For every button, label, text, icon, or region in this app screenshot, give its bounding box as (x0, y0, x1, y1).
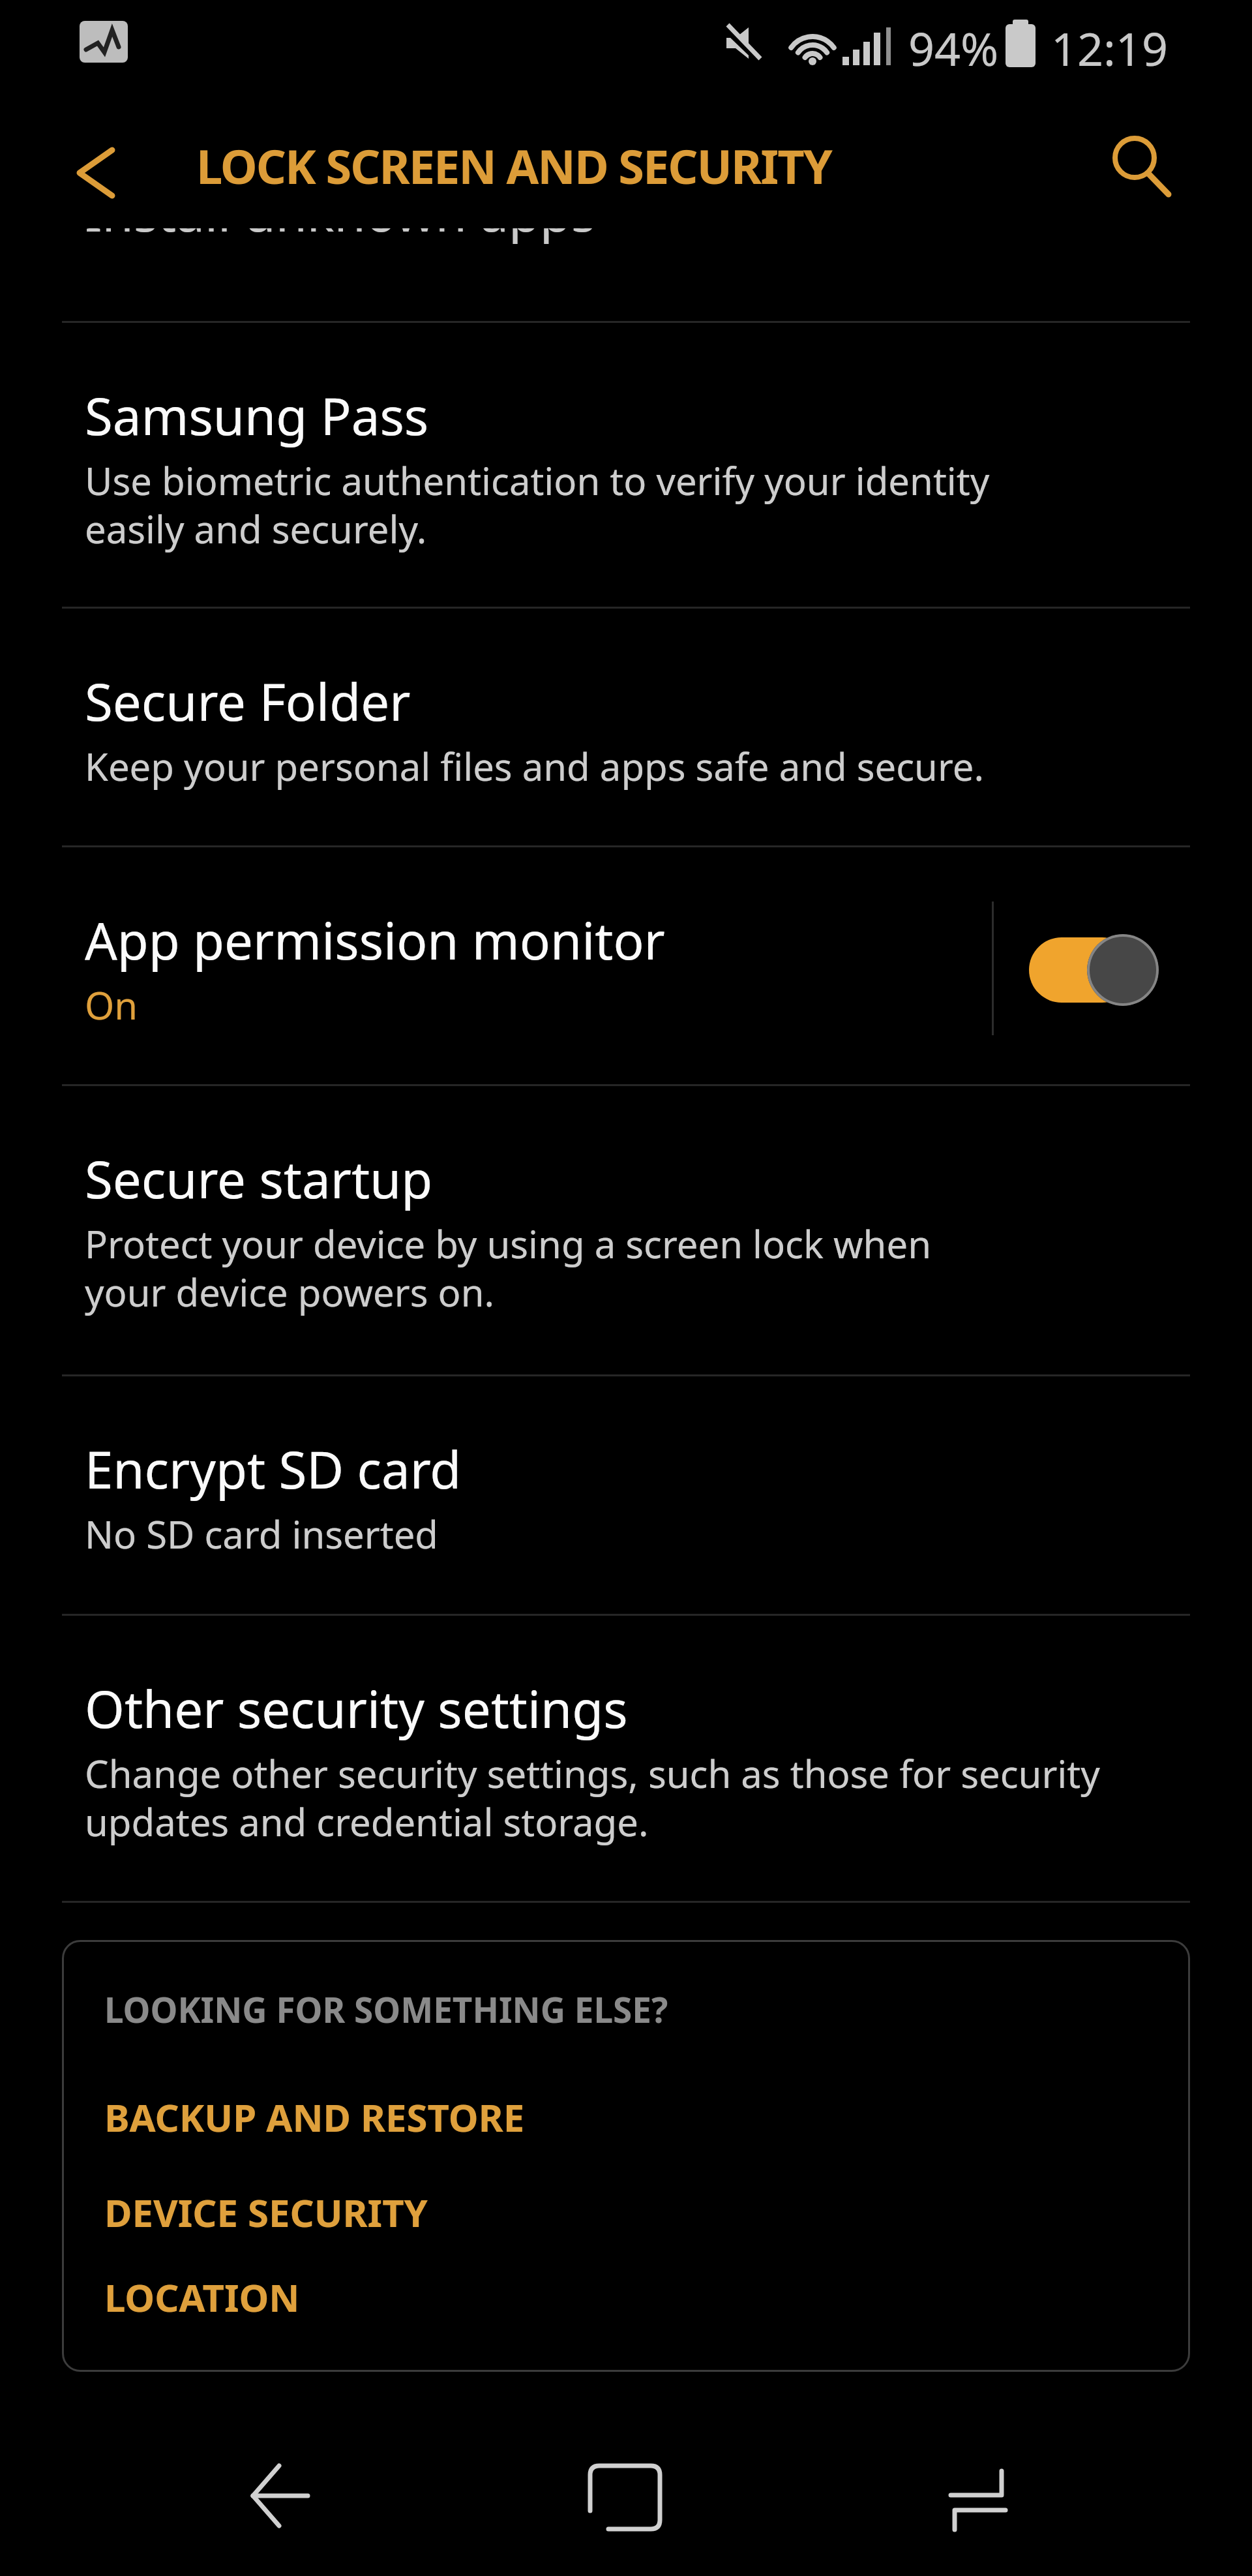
staticText: On (85, 979, 138, 1031)
button[interactable]: Encrypt SD card (0, 1374, 1252, 1614)
staticText: Use biometric authentication to verify y… (85, 455, 990, 554)
staticText: 94% (908, 17, 999, 79)
staticText: Change other security settings, such as … (85, 1748, 1100, 1847)
button[interactable]: Samsung Pass (0, 321, 1252, 607)
button[interactable]: Secure Folder (0, 607, 1252, 845)
button[interactable] (559, 2433, 690, 2564)
button[interactable]: Other security settings (0, 1614, 1252, 1901)
button[interactable]: BACKUP AND RESTORE (101, 2087, 522, 2133)
staticText: BACKUP AND RESTORE (104, 2091, 525, 2137)
staticText: LOOKING FOR SOMETHING ELSE? (104, 1986, 668, 2033)
staticText: No SD card inserted (85, 1508, 439, 1560)
button[interactable]: Secure startup (0, 1084, 1252, 1374)
staticText: LOCATION (104, 2271, 300, 2317)
button[interactable] (215, 2433, 346, 2564)
staticText: Secure Folder (85, 667, 411, 736)
staticText: DEVICE SECURITY (104, 2187, 428, 2232)
staticText: Other security settings (85, 1674, 628, 1743)
staticText: App permission monitor (85, 905, 665, 975)
button[interactable] (1021, 926, 1170, 1011)
staticText: Keep your personal files and apps safe a… (85, 740, 985, 792)
button[interactable]: LOCATION (101, 2267, 297, 2313)
button[interactable] (1095, 124, 1193, 222)
staticText: 12:19 (1051, 17, 1168, 79)
staticText: Install unknown apps (85, 228, 596, 247)
staticText: Protect your device by using a screen lo… (85, 1218, 931, 1318)
staticText: Secure startup (85, 1144, 433, 1213)
button[interactable] (913, 2433, 1043, 2564)
staticText: Encrypt SD card (85, 1434, 462, 1504)
staticText: LOCK SCREEN AND SECURITY (196, 134, 831, 198)
button[interactable]: App permission monitor (0, 845, 1252, 1084)
button[interactable] (52, 130, 137, 215)
staticText: Samsung Pass (85, 381, 429, 450)
button[interactable]: DEVICE SECURITY (101, 2183, 425, 2228)
